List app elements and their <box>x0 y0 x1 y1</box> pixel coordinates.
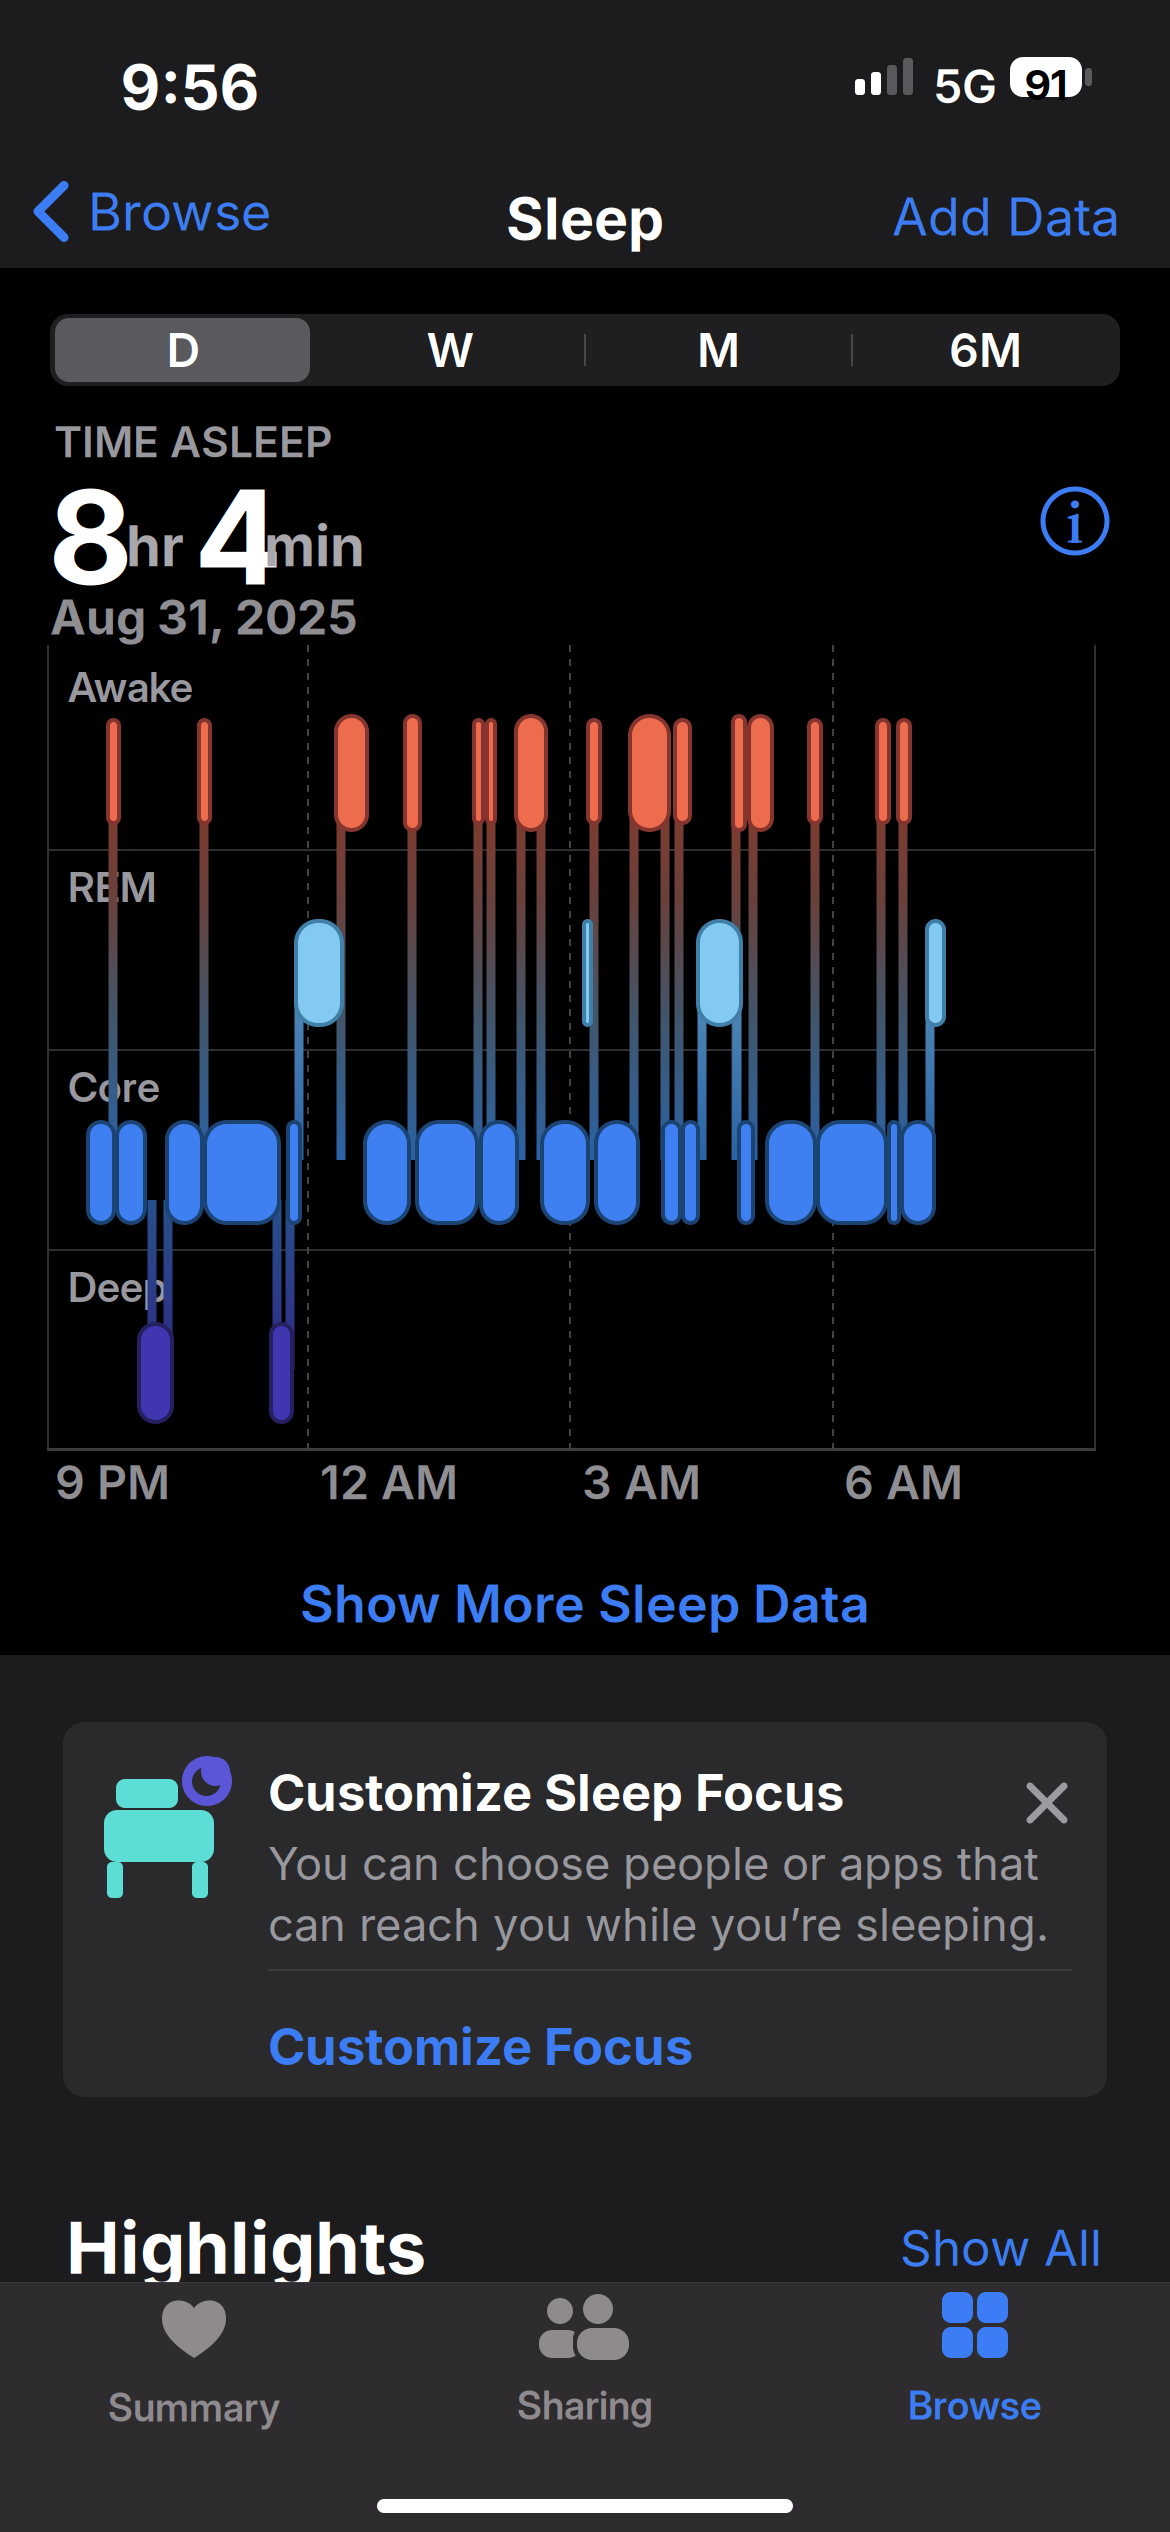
button[interactable]: M <box>585 314 852 386</box>
staticText: TIME ASLEEP <box>54 416 333 468</box>
button[interactable] <box>1030 1786 1064 1820</box>
button[interactable]: Browse <box>805 2292 1145 2429</box>
staticText: 5G <box>933 58 997 114</box>
staticText: Aug 31, 2025 <box>50 588 358 646</box>
staticText: Awake <box>68 662 193 712</box>
staticText: 8 <box>48 458 133 616</box>
button[interactable]: 6M <box>852 314 1119 386</box>
staticText: can reach you while you’re sleeping. <box>268 1897 1049 1952</box>
staticText: D <box>166 322 200 378</box>
staticText: W <box>426 322 474 378</box>
button[interactable]: Show All <box>900 2218 1102 2278</box>
staticText: i <box>1066 479 1084 563</box>
button[interactable]: Sharing <box>415 2294 755 2429</box>
staticText: Show More Sleep Data <box>300 1572 870 1635</box>
staticText: Customize Sleep Focus <box>268 1762 844 1823</box>
staticText: Browse <box>88 180 271 243</box>
staticText: 6 AM <box>844 1454 963 1510</box>
staticText: 3 AM <box>582 1454 701 1510</box>
staticText: Customize Focus <box>268 2016 693 2077</box>
staticText: Sleep <box>506 184 664 253</box>
staticText: Summary <box>108 2384 280 2431</box>
button[interactable]: i <box>1041 487 1109 555</box>
staticText: M <box>697 322 740 378</box>
staticText: 4 <box>194 458 282 616</box>
button[interactable]: Show More Sleep Data <box>300 1572 870 1635</box>
staticText: hr <box>126 512 184 580</box>
staticText: You can choose people or apps that <box>268 1836 1039 1891</box>
staticText: Core <box>68 1062 160 1112</box>
staticText: 12 AM <box>320 1454 458 1510</box>
staticText: 91 <box>1025 60 1067 110</box>
button[interactable]: D <box>50 314 317 386</box>
staticText: Highlights <box>66 2204 426 2291</box>
staticText: 6M <box>949 322 1022 378</box>
staticText: Deep <box>68 1262 167 1312</box>
button[interactable]: Browse <box>38 180 271 243</box>
staticText: Sharing <box>517 2382 653 2429</box>
button[interactable]: Customize Focus <box>268 2016 693 2077</box>
button[interactable]: Add Data <box>892 185 1120 248</box>
staticText: REM <box>68 862 157 912</box>
staticText: Show All <box>900 2218 1102 2278</box>
button[interactable]: W <box>317 314 584 386</box>
staticText: min <box>264 512 365 580</box>
staticText: Browse <box>908 2382 1042 2429</box>
staticText: 9:56 <box>120 50 259 124</box>
staticText: Add Data <box>892 185 1120 248</box>
button[interactable]: Summary <box>24 2300 364 2431</box>
staticText: 9 PM <box>55 1454 170 1510</box>
